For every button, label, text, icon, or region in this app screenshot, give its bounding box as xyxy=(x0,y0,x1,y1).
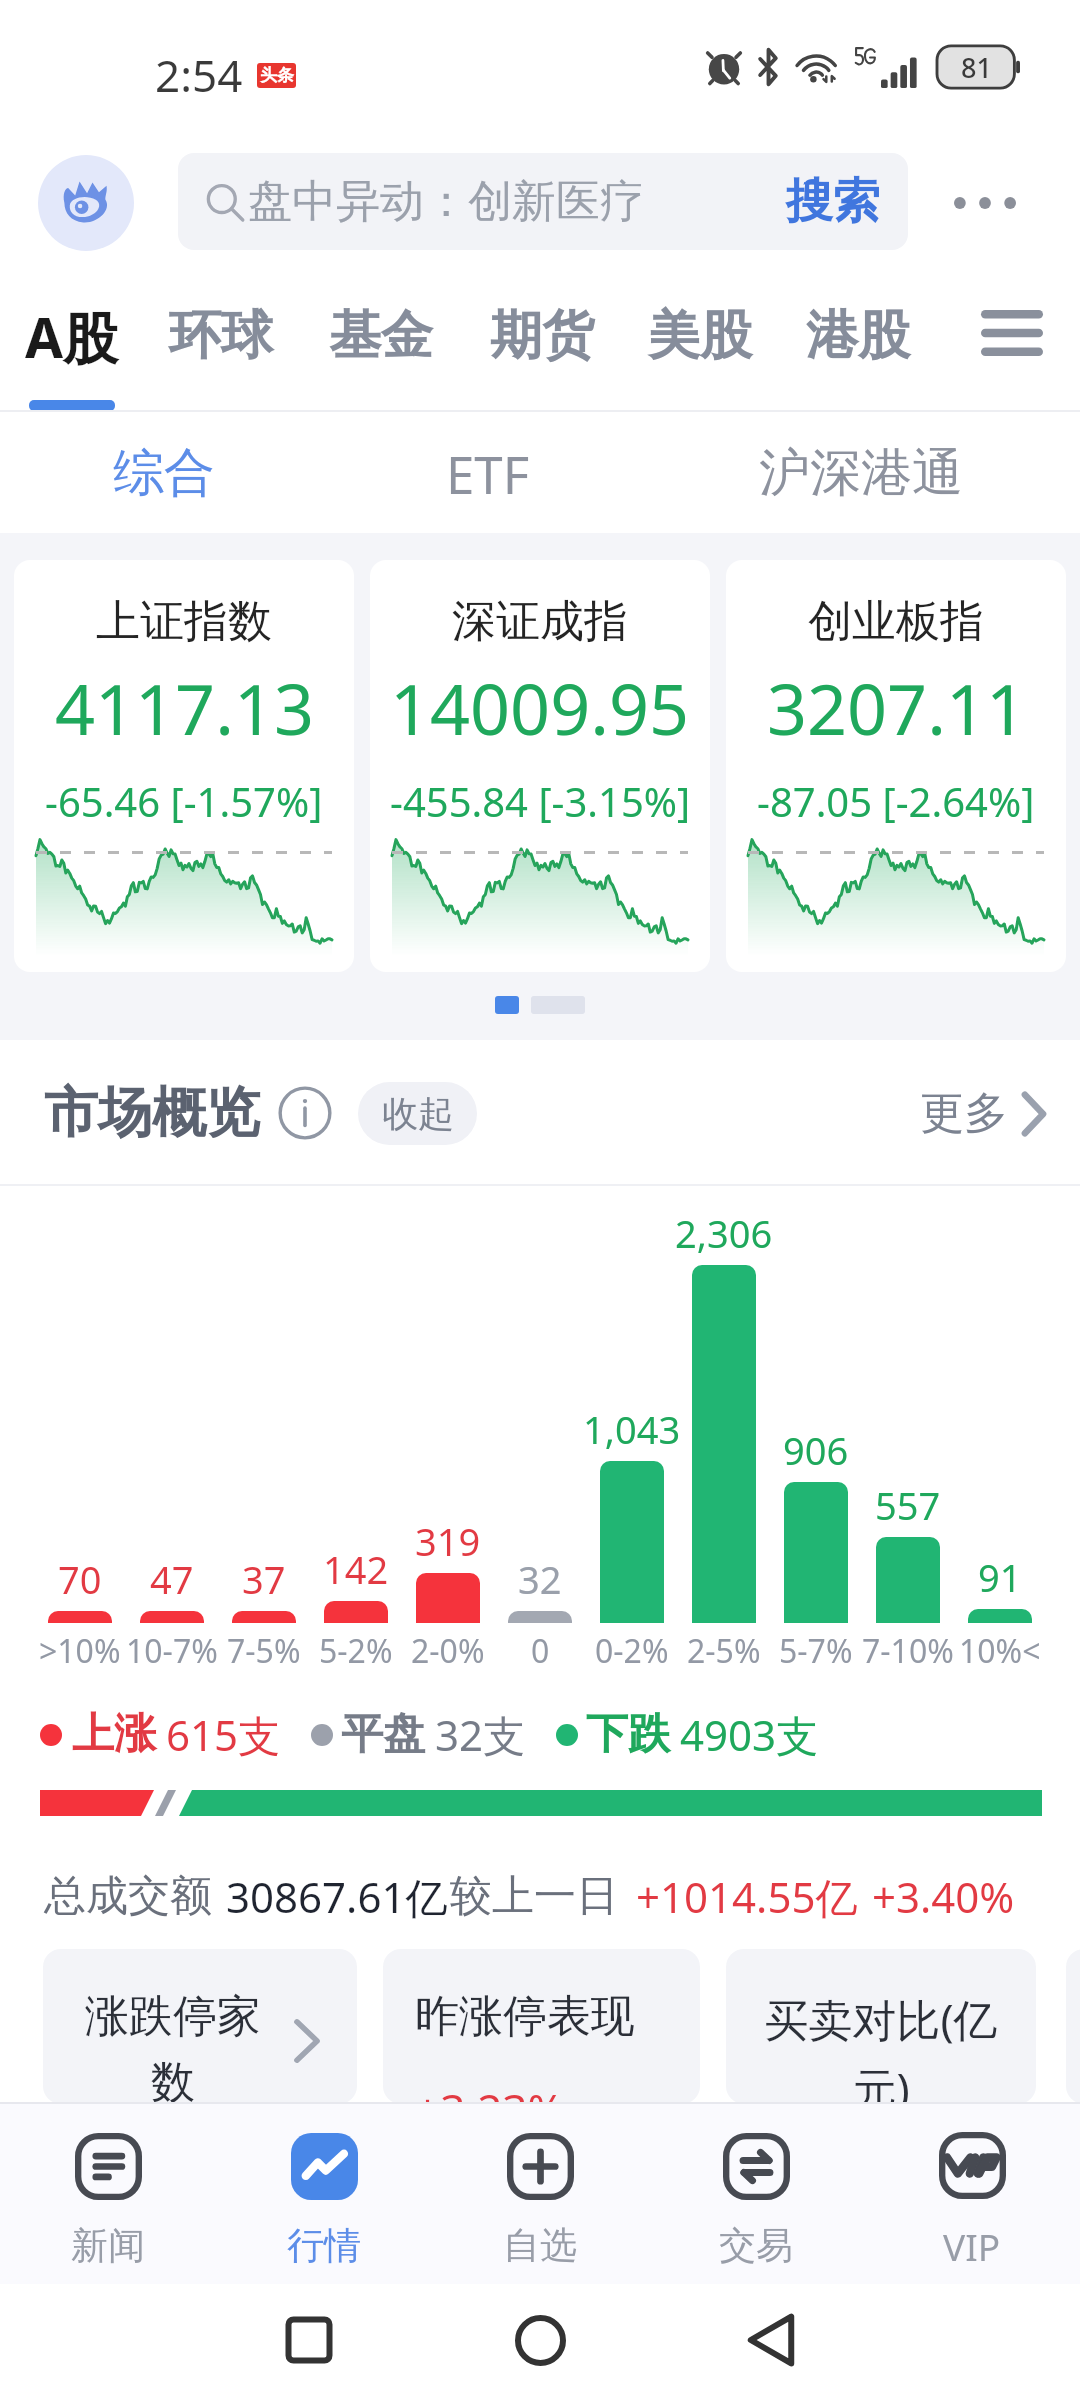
staticText: 昨涨停表现 xyxy=(415,1989,635,2044)
staticText: 37 xyxy=(242,1553,286,1605)
button[interactable]: More options xyxy=(944,178,1026,228)
staticText: 30867.61亿 xyxy=(226,1868,448,1925)
staticText: -65.46 [-1.57%] xyxy=(45,774,323,828)
button[interactable]: 创业板指 xyxy=(726,560,1066,972)
staticText: 港股 xyxy=(806,303,910,369)
button[interactable]: Menu xyxy=(962,283,1062,383)
button[interactable]: 综合 xyxy=(4,413,324,533)
staticText: 自选 xyxy=(503,2222,577,2269)
button[interactable]: 行情 xyxy=(216,2110,432,2292)
staticText: >10% xyxy=(39,1629,121,1673)
staticText: 美股 xyxy=(648,303,752,369)
staticText: VIP xyxy=(943,2221,1001,2271)
staticText: -455.84 [-3.15%] xyxy=(390,774,691,828)
staticText: -87.05 [-2.64%] xyxy=(757,774,1035,828)
staticText: 平盘 xyxy=(341,1708,425,1761)
button[interactable]: 自选 xyxy=(432,2110,648,2292)
staticText: 91 xyxy=(978,1551,1022,1603)
staticText: 下跌 xyxy=(586,1708,670,1761)
staticText: 32支 xyxy=(435,1706,526,1763)
staticText: 沪深港通 xyxy=(759,441,963,505)
staticText: ETF xyxy=(446,439,530,508)
button[interactable]: 更多 xyxy=(920,1086,1046,1141)
button[interactable]: 港股 xyxy=(790,265,924,405)
button[interactable]: Profile xyxy=(38,155,134,251)
button[interactable]: 期货 xyxy=(474,265,608,405)
button[interactable]: 深证成指 xyxy=(370,560,710,972)
staticText: 盘中异动：创新医疗 xyxy=(248,174,644,229)
button[interactable]: 新闻 xyxy=(0,2110,216,2292)
staticText: 2:54 xyxy=(155,45,243,105)
staticText: 0 xyxy=(531,1629,550,1673)
staticText: 买卖对比(亿元) xyxy=(748,1989,1014,2104)
staticText: 基金 xyxy=(329,303,433,369)
button[interactable]: 盘中异动：创新医疗 xyxy=(178,153,908,250)
staticText: 0-2% xyxy=(595,1629,669,1673)
button[interactable]: 上证指数 xyxy=(14,560,354,972)
staticText: 创业板指 xyxy=(808,594,984,649)
button[interactable]: Back xyxy=(726,2295,816,2385)
button[interactable]: A股 xyxy=(9,265,139,405)
staticText: 1,043 xyxy=(583,1403,681,1455)
button[interactable]: 买卖对比(亿元) xyxy=(726,1949,1036,2104)
staticText: 47 xyxy=(150,1553,194,1605)
staticText: 5-2% xyxy=(319,1629,393,1673)
staticText: 行情 xyxy=(287,2222,361,2269)
staticText: 2,306 xyxy=(675,1207,773,1259)
staticText: 2-0% xyxy=(411,1629,485,1673)
button[interactable]: 收起 xyxy=(358,1082,477,1145)
staticText: 市场概览 xyxy=(44,1079,260,1147)
staticText: 4117.13 xyxy=(55,660,314,755)
button[interactable]: 涨跌停家数 xyxy=(43,1949,357,2104)
staticText: 较上一日 xyxy=(450,1870,618,1923)
button[interactable]: VIP xyxy=(864,2110,1080,2292)
staticText: +1014.55亿 xyxy=(636,1868,858,1925)
staticText: 头条 xyxy=(260,65,294,86)
staticText: 搜索 xyxy=(786,172,880,231)
staticText: 交易 xyxy=(719,2222,793,2269)
staticText: +3.40% xyxy=(872,1868,1015,1925)
staticText: 3207.11 xyxy=(767,660,1026,755)
staticText: 新闻 xyxy=(71,2222,145,2269)
button[interactable]: 美股 xyxy=(632,265,766,405)
staticText: 涨跌停家数 xyxy=(82,1989,264,2104)
staticText: 4903支 xyxy=(680,1706,819,1763)
staticText: 综合 xyxy=(113,441,215,505)
staticText: 70 xyxy=(58,1553,102,1605)
staticText: 收起 xyxy=(382,1091,454,1136)
staticText: 上涨 xyxy=(72,1708,156,1761)
staticText: 615支 xyxy=(166,1706,281,1763)
staticText: 5-7% xyxy=(779,1629,853,1673)
staticText: 环球 xyxy=(169,303,273,369)
staticText: 14009.95 xyxy=(390,660,690,755)
button[interactable]: Recents xyxy=(264,2295,354,2385)
staticText: 557 xyxy=(875,1479,941,1531)
staticText: 32 xyxy=(518,1553,562,1605)
staticText: 上证指数 xyxy=(96,594,272,649)
staticText: 7-10% xyxy=(862,1629,954,1673)
staticText: 10-7% xyxy=(126,1629,218,1673)
staticText: +3.23% xyxy=(415,2079,565,2104)
staticText: 906 xyxy=(783,1424,849,1476)
staticText: 7-5% xyxy=(227,1629,301,1673)
button[interactable]: 交易 xyxy=(648,2110,864,2292)
button[interactable]: ETF xyxy=(328,413,648,533)
staticText: 142 xyxy=(323,1543,389,1595)
staticText: 2-5% xyxy=(687,1629,761,1673)
button[interactable]: Home xyxy=(495,2295,585,2385)
staticText: 更多 xyxy=(920,1086,1008,1141)
button[interactable]: 昨涨停表现 xyxy=(383,1949,700,2104)
button[interactable]: 沪深港通 xyxy=(701,413,1021,533)
staticText: 总成交额 xyxy=(44,1870,212,1923)
button[interactable]: 环球 xyxy=(153,265,287,405)
staticText: 81 xyxy=(961,49,992,86)
staticText: 深证成指 xyxy=(452,594,628,649)
button[interactable]: 基金 xyxy=(313,265,447,405)
staticText: 319 xyxy=(415,1515,481,1567)
staticText: 10%< xyxy=(959,1629,1041,1673)
staticText: A股 xyxy=(25,299,119,374)
staticText: 期货 xyxy=(490,303,594,369)
